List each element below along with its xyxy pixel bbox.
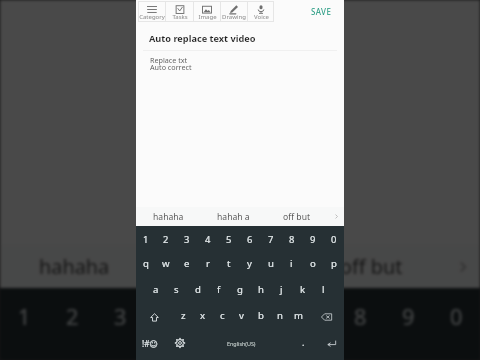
button[interactable]: off but <box>297 245 445 288</box>
button[interactable]: Drawing <box>221 1 247 22</box>
button[interactable]: q <box>136 252 156 278</box>
button[interactable]: 0 <box>323 226 344 252</box>
staticText: Tasks <box>172 13 188 21</box>
button[interactable]: hahah a <box>149 245 297 288</box>
button[interactable]: Voice <box>248 1 274 22</box>
button[interactable]: Shift <box>136 304 173 330</box>
button[interactable]: c <box>213 304 232 330</box>
staticText: 4 <box>205 233 211 246</box>
button[interactable]: b <box>251 304 270 330</box>
staticText: i <box>290 257 293 270</box>
button[interactable]: k <box>292 278 313 304</box>
staticText: hahah a <box>185 253 261 280</box>
button[interactable]: 1 <box>0 288 48 347</box>
button[interactable]: v <box>232 304 251 330</box>
button[interactable]: 6 <box>240 288 288 347</box>
button[interactable]: x <box>193 304 213 330</box>
button[interactable]: z <box>173 304 193 330</box>
button[interactable]: e <box>176 252 197 278</box>
button[interactable]: i <box>336 347 384 360</box>
staticText: d <box>195 283 201 296</box>
button[interactable]: i <box>281 252 302 278</box>
button[interactable]: SAVE <box>308 4 335 19</box>
button[interactable]: n <box>270 304 289 330</box>
button[interactable]: a <box>145 278 166 304</box>
button[interactable]: h <box>250 278 271 304</box>
button[interactable]: English(US) <box>195 330 288 356</box>
staticText: 5 <box>226 233 232 246</box>
staticText: r <box>206 257 210 270</box>
button[interactable]: Tasks <box>166 1 193 22</box>
staticText: b <box>258 309 264 322</box>
button[interactable]: 9 <box>384 288 432 347</box>
staticText: w <box>162 257 170 270</box>
button[interactable]: 0 <box>432 288 480 347</box>
staticText: Image <box>198 13 217 21</box>
button[interactable]: 6 <box>239 226 260 252</box>
button[interactable]: Enter <box>318 330 344 356</box>
staticText: Voice <box>254 13 269 21</box>
button[interactable]: 3 <box>96 288 144 347</box>
button[interactable]: Image <box>194 1 220 22</box>
button[interactable]: . <box>288 330 318 356</box>
button[interactable]: o <box>302 252 323 278</box>
button[interactable]: 9 <box>302 226 323 252</box>
button[interactable]: p <box>323 252 344 278</box>
button[interactable]: !#☺ <box>136 330 164 356</box>
button[interactable]: l <box>313 278 334 304</box>
button[interactable]: 2 <box>48 288 96 347</box>
button[interactable]: u <box>260 252 281 278</box>
button[interactable]: m <box>289 304 308 330</box>
button[interactable]: 5 <box>192 288 240 347</box>
button[interactable]: Category <box>138 1 165 22</box>
button[interactable]: More suggestions <box>445 245 480 288</box>
button[interactable]: Backspace <box>308 304 344 330</box>
button[interactable]: g <box>229 278 250 304</box>
button[interactable]: hahah a <box>201 207 265 226</box>
button[interactable]: e <box>96 347 144 360</box>
staticText: 5 <box>210 302 223 332</box>
button[interactable]: j <box>271 278 292 304</box>
button[interactable]: s <box>166 278 187 304</box>
button[interactable]: More suggestions <box>329 207 344 226</box>
staticText: Auto replace text video <box>149 32 256 45</box>
button[interactable]: 8 <box>281 226 302 252</box>
button[interactable]: y <box>239 252 260 278</box>
button[interactable]: 5 <box>218 226 239 252</box>
button[interactable]: 4 <box>144 288 192 347</box>
button[interactable]: 7 <box>260 226 281 252</box>
button[interactable]: f <box>208 278 229 304</box>
button[interactable]: off but <box>265 207 329 226</box>
button[interactable]: r <box>144 347 192 360</box>
staticText: SAVE <box>311 6 332 17</box>
staticText: u <box>268 257 274 270</box>
staticText: 1 <box>18 302 31 332</box>
button[interactable]: 2 <box>156 226 176 252</box>
button[interactable]: 3 <box>176 226 197 252</box>
staticText: off but <box>283 211 311 223</box>
button[interactable]: d <box>187 278 208 304</box>
button[interactable]: 8 <box>336 288 384 347</box>
button[interactable]: hahaha <box>136 207 201 226</box>
button[interactable]: Keyboard settings <box>164 330 195 356</box>
button[interactable]: hahaha <box>0 245 149 288</box>
button[interactable]: r <box>197 252 218 278</box>
staticText: hahaha <box>153 211 184 223</box>
button[interactable]: 4 <box>197 226 218 252</box>
button[interactable]: w <box>156 252 176 278</box>
button[interactable]: t <box>218 252 239 278</box>
button[interactable]: 1 <box>136 226 156 252</box>
button[interactable]: 7 <box>288 288 336 347</box>
